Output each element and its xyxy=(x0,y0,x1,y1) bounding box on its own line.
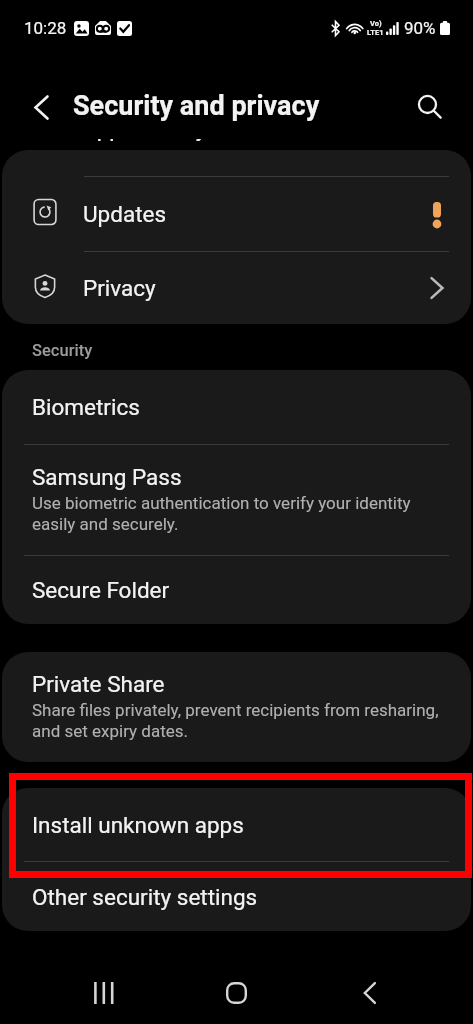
button[interactable]: Back xyxy=(13,79,69,135)
button[interactable]: Samsung Pass xyxy=(2,445,471,555)
staticText: Use biometric authentication to verify y… xyxy=(32,493,411,534)
staticText: Updates xyxy=(83,201,167,227)
button[interactable]: Private Share xyxy=(2,652,471,762)
staticText: 90% xyxy=(404,18,436,38)
button[interactable]: Recent apps xyxy=(66,958,138,1024)
button[interactable]: Updates xyxy=(2,177,471,251)
staticText: Share files privately, prevent recipient… xyxy=(32,700,439,741)
staticText: Private Share xyxy=(32,671,165,697)
staticText: Biometrics xyxy=(32,394,140,420)
staticText: Vo) xyxy=(370,19,382,28)
button[interactable]: Biometrics xyxy=(2,370,471,444)
staticText: Install unknown apps xyxy=(32,812,244,838)
staticText: 10:28 xyxy=(24,18,67,38)
staticText: Security xyxy=(32,341,93,360)
button[interactable]: Secure Folder xyxy=(2,556,471,624)
staticText: LTE1 xyxy=(367,28,384,37)
button[interactable]: Privacy xyxy=(2,252,471,324)
staticText: Security and privacy xyxy=(73,90,320,122)
button[interactable]: Other security settings xyxy=(2,862,471,931)
button[interactable]: Install unknown apps xyxy=(2,788,471,861)
staticText: Secure Folder xyxy=(32,577,170,603)
button[interactable]: Home xyxy=(200,958,272,1024)
button[interactable]: Back xyxy=(334,958,406,1024)
staticText: Privacy xyxy=(83,275,156,301)
staticText: Other security settings xyxy=(32,884,258,910)
staticText: App security xyxy=(82,139,382,145)
staticText: Samsung Pass xyxy=(32,464,182,490)
button[interactable]: Search xyxy=(402,79,458,135)
